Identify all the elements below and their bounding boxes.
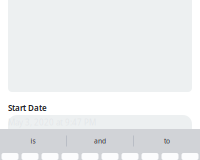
button[interactable]: is [0,129,66,153]
staticText: is [30,137,35,145]
staticText: and [94,137,106,145]
button[interactable]: May 3, 2020 at 9:47 PM [0,115,200,143]
button[interactable]: to [134,129,200,153]
button[interactable]: and [67,129,133,153]
staticText: to [164,137,170,145]
staticText: Start Date [8,103,47,113]
